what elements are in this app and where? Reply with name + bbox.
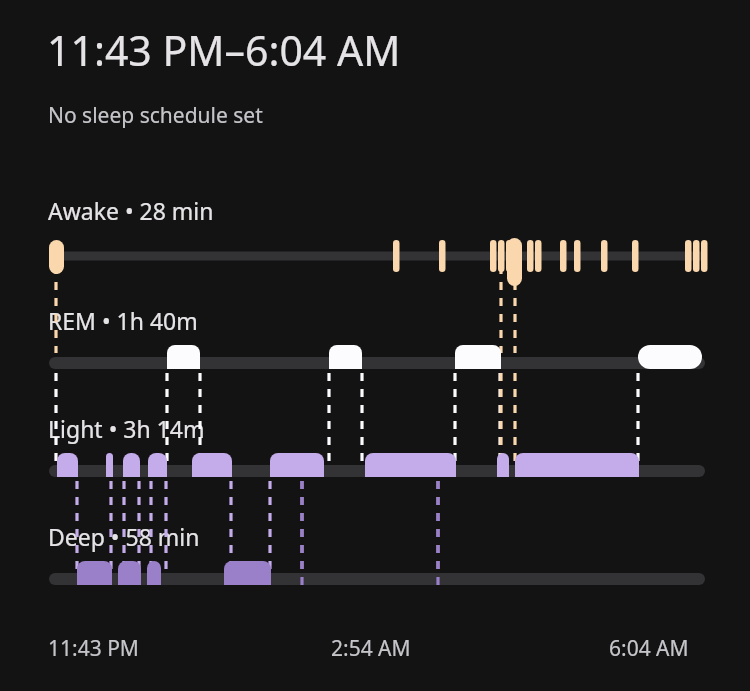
button[interactable]: Sleep stages hypnogram, 11:43 PM to 6:04…: [0, 0, 750, 691]
